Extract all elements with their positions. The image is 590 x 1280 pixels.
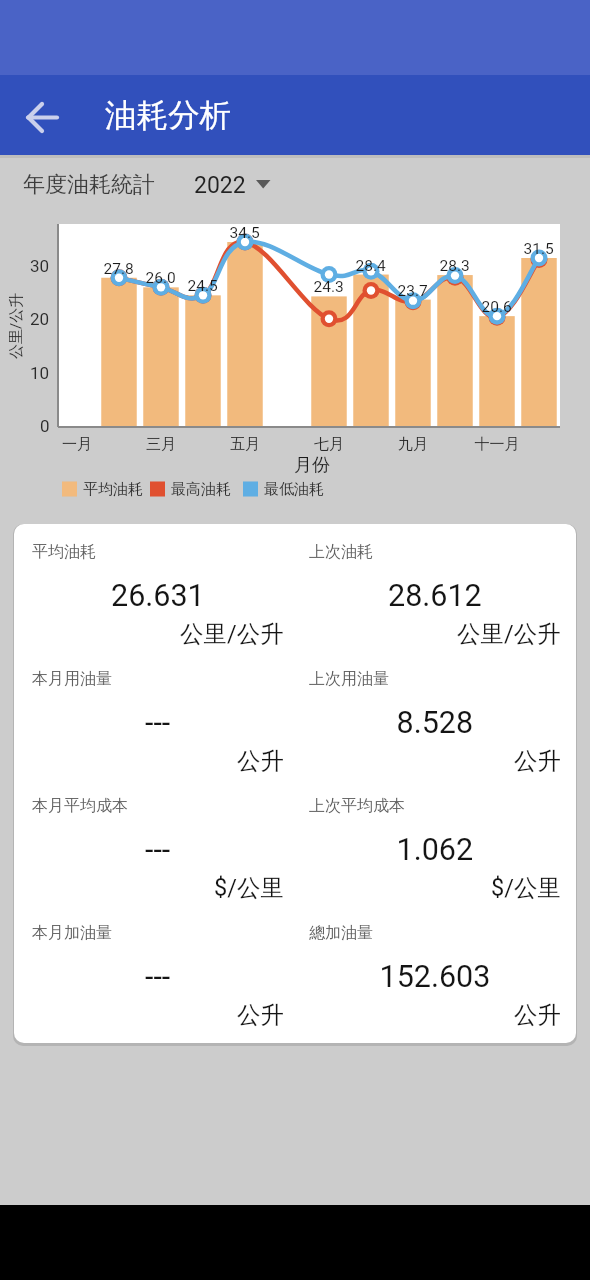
button[interactable] xyxy=(18,93,66,141)
button[interactable] xyxy=(190,165,280,205)
